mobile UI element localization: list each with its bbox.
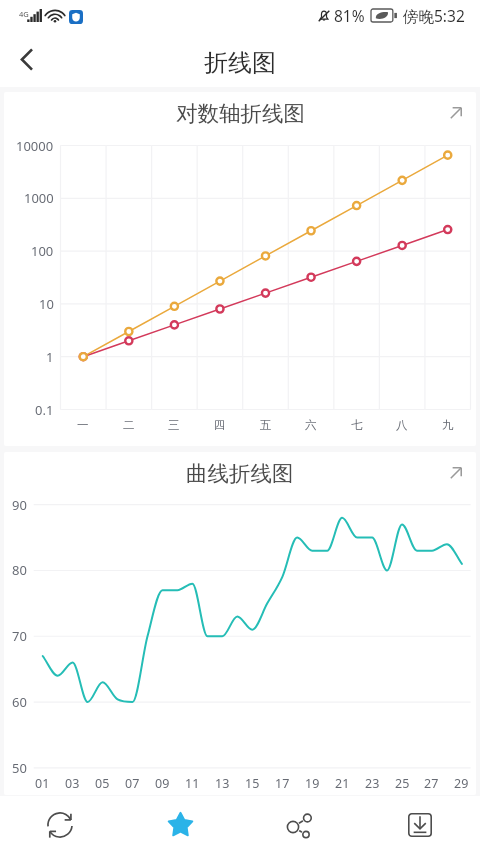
staticText: 100 (31, 242, 54, 260)
staticText: 60 (12, 693, 27, 711)
staticText: 对数轴折线图 (176, 100, 305, 127)
button[interactable]: Expand chart (441, 98, 471, 128)
staticText: 27 (424, 775, 439, 792)
staticText: 13 (215, 775, 230, 792)
button[interactable]: 对数轴折线图 (4, 92, 476, 446)
staticText: 九 (442, 418, 454, 432)
staticText: 六 (305, 418, 317, 432)
staticText: 1000 (24, 189, 54, 207)
staticText: 15 (245, 775, 260, 792)
button[interactable]: Favorite (120, 796, 240, 853)
staticText: 折线图 (204, 48, 276, 78)
staticText: 四 (214, 418, 226, 432)
button[interactable]: 曲线折线图 (4, 452, 476, 795)
staticText: 25 (395, 775, 410, 792)
staticText: 81% (334, 5, 365, 26)
staticText: 0.1 (35, 401, 54, 419)
staticText: 05 (95, 775, 110, 792)
staticText: 4G (19, 9, 29, 19)
staticText: 29 (454, 775, 469, 792)
staticText: 70 (12, 627, 27, 645)
button[interactable]: Refresh (0, 796, 120, 853)
staticText: 曲线折线图 (186, 460, 294, 487)
staticText: 90 (12, 496, 27, 514)
staticText: 50 (12, 759, 27, 777)
staticText: 17 (275, 775, 290, 792)
staticText: 10000 (16, 137, 54, 155)
staticText: 80 (12, 561, 27, 579)
staticText: 七 (351, 418, 363, 432)
staticText: 09 (155, 775, 170, 792)
staticText: 10 (39, 295, 54, 313)
staticText: 五 (260, 418, 272, 432)
staticText: 19 (305, 775, 320, 792)
staticText: 11 (185, 775, 200, 792)
staticText: 23 (365, 775, 380, 792)
button[interactable]: Share (240, 796, 360, 853)
staticText: 八 (396, 418, 408, 432)
staticText: 二 (123, 418, 135, 432)
button[interactable]: Back (0, 30, 52, 87)
button[interactable]: Expand chart (441, 458, 471, 488)
staticText: 21 (335, 775, 350, 792)
staticText: 03 (65, 775, 80, 792)
staticText: 三 (168, 418, 180, 432)
staticText: 傍晚5:32 (403, 5, 465, 26)
button[interactable]: Download (360, 796, 480, 853)
staticText: 07 (125, 775, 140, 792)
staticText: 01 (35, 775, 50, 792)
staticText: 一 (77, 418, 89, 432)
staticText: 1 (46, 348, 54, 366)
